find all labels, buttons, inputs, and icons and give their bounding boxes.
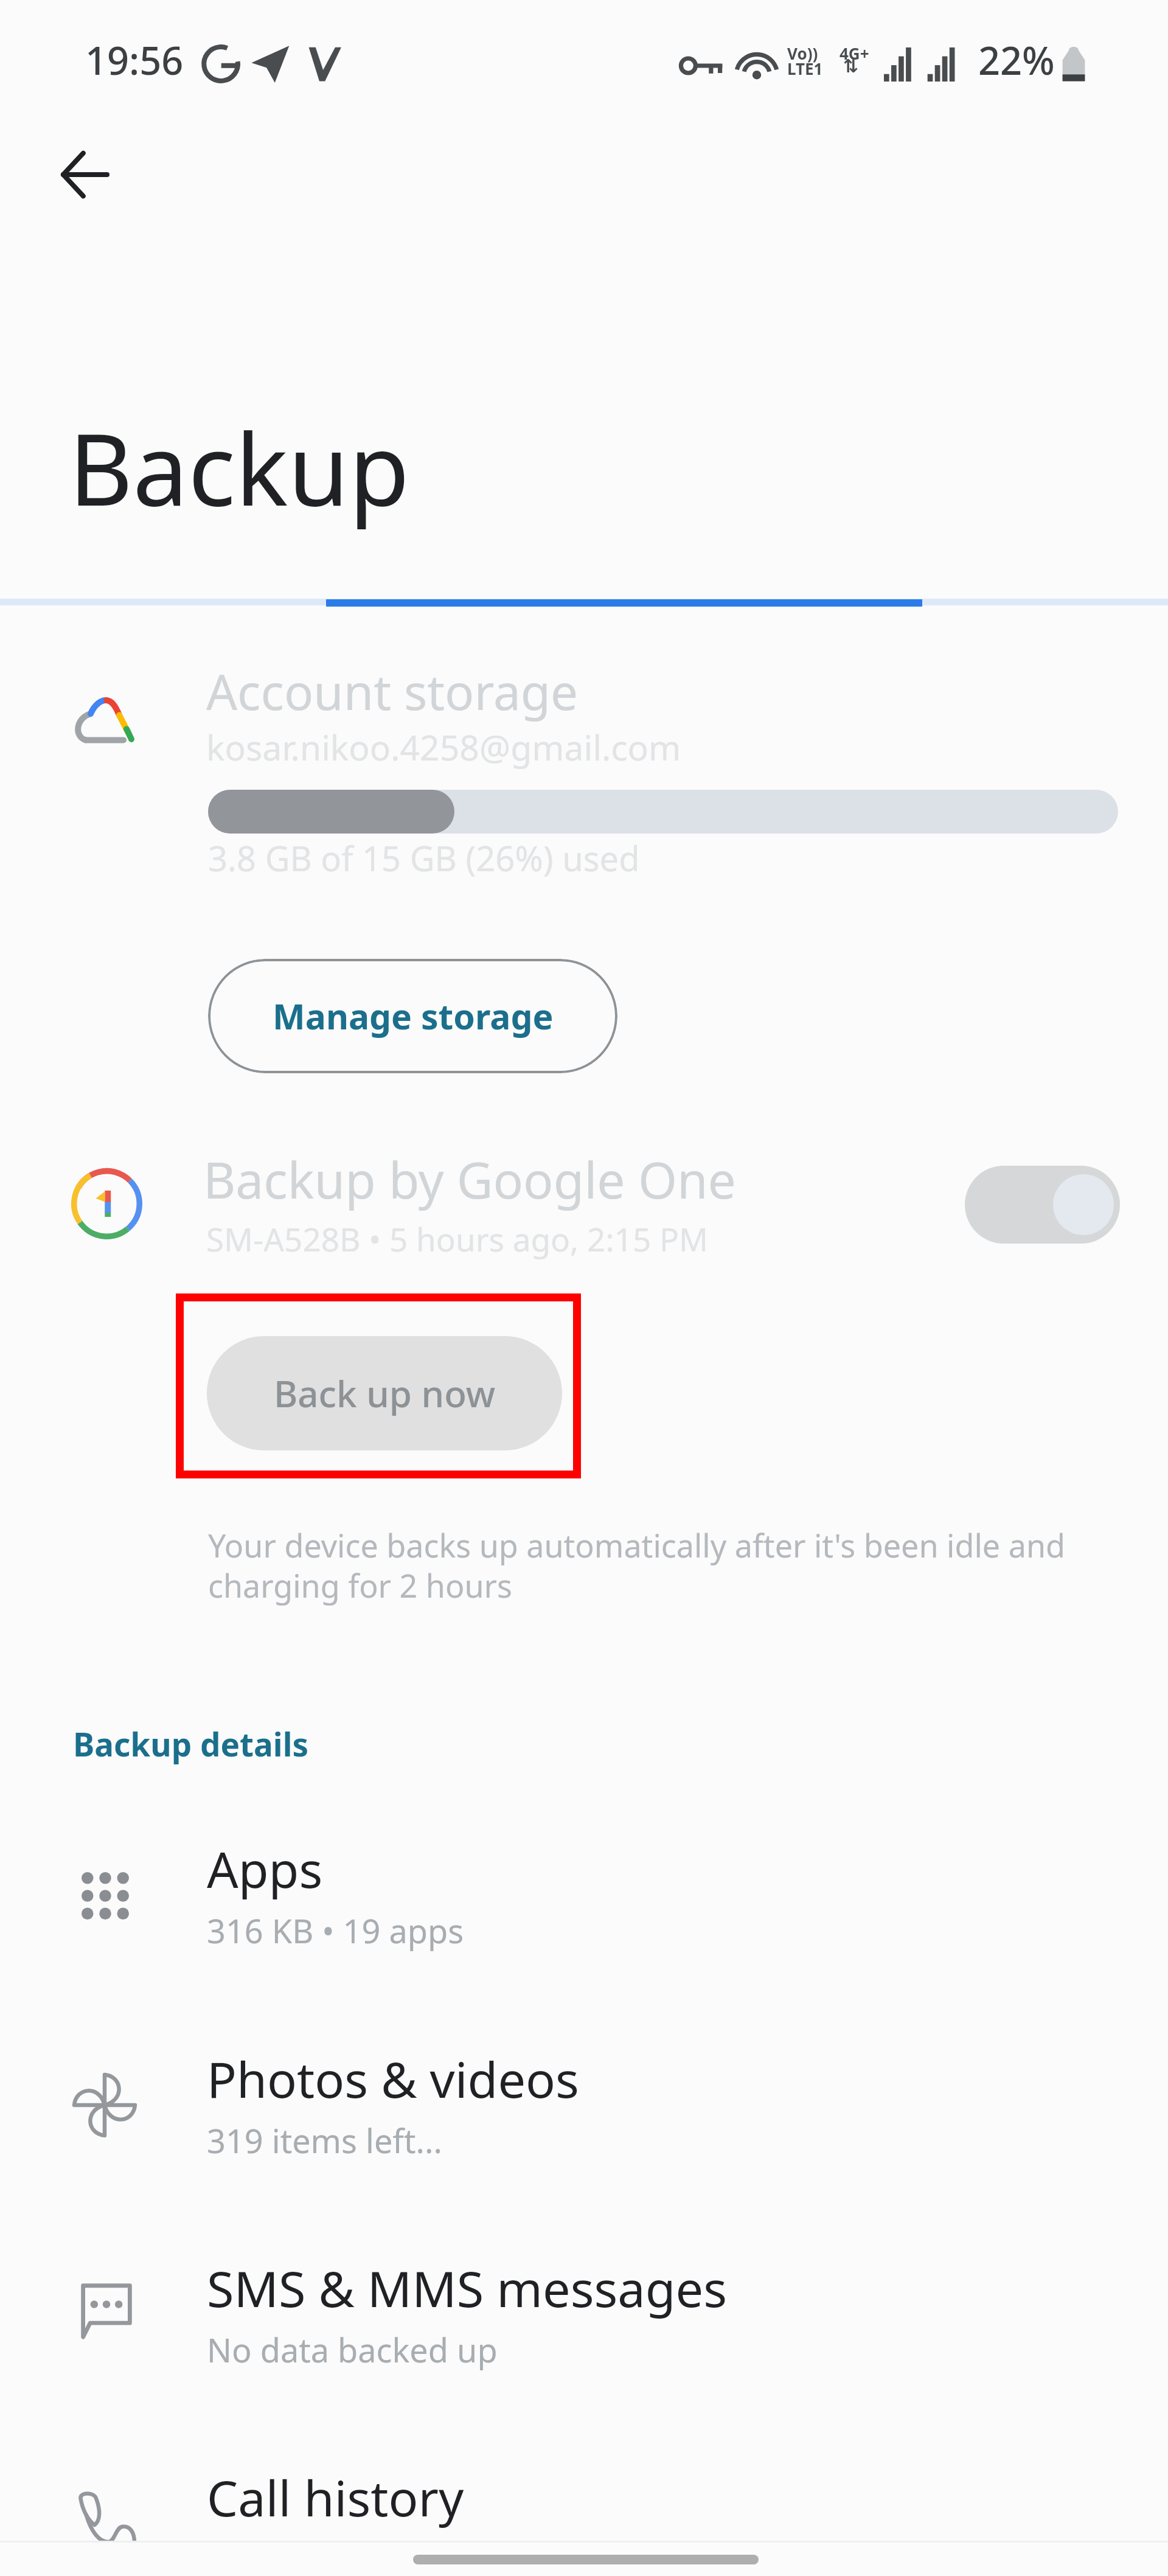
staticText: kosar.nikoo.4258@gmail.com bbox=[206, 723, 681, 771]
button[interactable] bbox=[0, 2205, 1168, 2381]
staticText: SM-A528B • 5 hours ago, 2:15 PM bbox=[206, 1217, 709, 1261]
staticText: 316 KB • 19 apps bbox=[207, 1908, 464, 1953]
staticText: SMS & MMS messages bbox=[207, 2254, 728, 2321]
staticText: No data backed up bbox=[207, 2327, 498, 2372]
button[interactable]: Back up now bbox=[207, 1336, 562, 1450]
staticText: 4G+ bbox=[839, 43, 869, 64]
staticText: Apps bbox=[207, 1835, 323, 1902]
staticText: Call history bbox=[207, 2463, 464, 2530]
button[interactable]: Manage storage bbox=[208, 959, 617, 1073]
button[interactable] bbox=[0, 1786, 1168, 1962]
staticText: Account storage bbox=[206, 658, 579, 724]
staticText: ⇅ bbox=[843, 55, 859, 77]
staticText: LTE1 bbox=[787, 58, 823, 79]
button[interactable]: Backup by Google One toggle bbox=[965, 1166, 1120, 1244]
button[interactable] bbox=[0, 2414, 1168, 2576]
staticText: Vo)) bbox=[787, 43, 818, 64]
staticText: 319 items left... bbox=[207, 2118, 442, 2163]
staticText: Photos & videos bbox=[207, 2045, 579, 2112]
button[interactable]: Back bbox=[35, 125, 135, 225]
staticText: 22% bbox=[978, 34, 1055, 86]
staticText: 19:56 bbox=[85, 34, 184, 86]
staticText: 3.8 GB of 15 GB (26%) used bbox=[208, 835, 640, 881]
staticText: Manage storage bbox=[273, 992, 554, 1040]
button[interactable] bbox=[0, 1996, 1168, 2172]
staticText: Back up now bbox=[274, 1368, 496, 1418]
staticText: Your device backs up automatically after… bbox=[208, 1523, 1065, 1607]
staticText: Backup bbox=[69, 400, 410, 535]
staticText: Backup details bbox=[73, 1722, 309, 1766]
staticText: Backup by Google One bbox=[203, 1145, 736, 1213]
